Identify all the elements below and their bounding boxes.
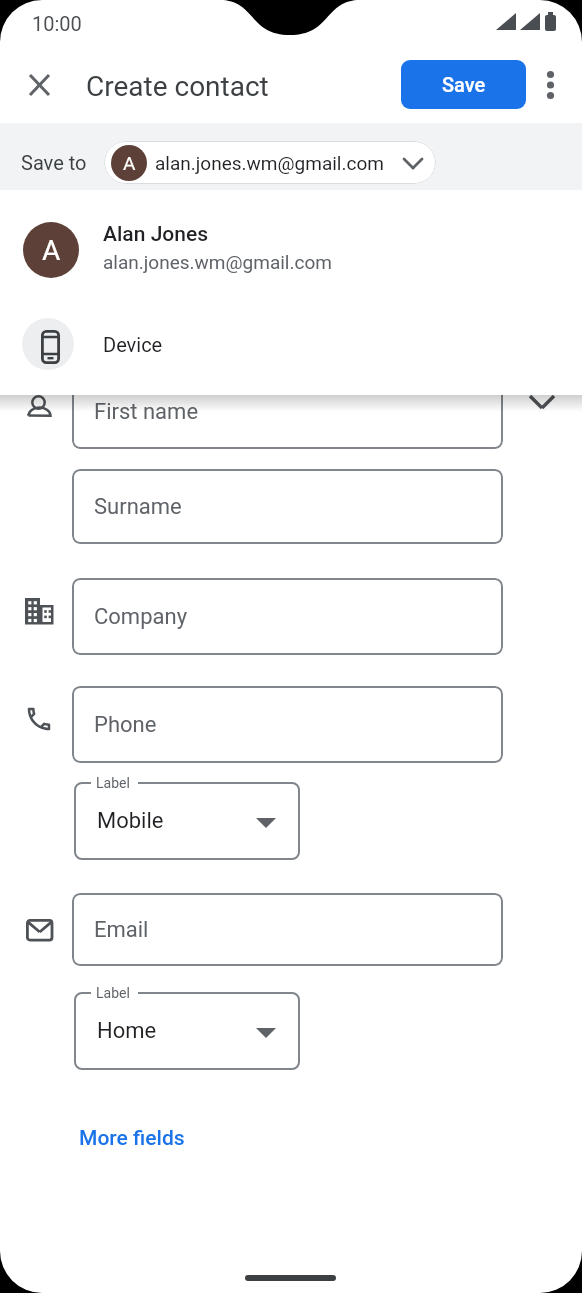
button[interactable]: [70, 1118, 195, 1158]
staticText: A: [42, 234, 61, 267]
staticText: First name: [94, 399, 199, 425]
staticText: 10:00: [32, 12, 82, 35]
staticText: alan.jones.wm@gmail.com: [103, 251, 332, 273]
button[interactable]: Save: [401, 60, 526, 109]
staticText: Surname: [94, 494, 182, 520]
button[interactable]: First name: [72, 374, 503, 449]
staticText: Label: [96, 775, 130, 791]
staticText: Save: [442, 73, 486, 96]
button[interactable]: [0, 202, 582, 294]
button[interactable]: Mobile: [74, 782, 300, 860]
button[interactable]: [526, 385, 558, 417]
button[interactable]: Home: [74, 992, 300, 1070]
staticText: Mobile: [97, 808, 164, 834]
staticText: Email: [94, 917, 149, 943]
button[interactable]: Surname: [72, 469, 503, 544]
staticText: A: [123, 152, 136, 174]
button[interactable]: Company: [72, 578, 503, 655]
button[interactable]: Email: [72, 893, 503, 966]
button[interactable]: [0, 306, 582, 390]
staticText: alan.jones.wm@gmail.com: [155, 152, 384, 174]
staticText: Home: [97, 1018, 157, 1044]
button[interactable]: [535, 69, 567, 101]
staticText: Save to: [21, 151, 87, 174]
staticText: Company: [94, 604, 188, 630]
staticText: Alan Jones: [103, 222, 209, 247]
staticText: More fields: [79, 1126, 185, 1151]
button[interactable]: [24, 69, 56, 101]
staticText: Device: [103, 333, 163, 356]
button[interactable]: A: [104, 141, 436, 184]
staticText: Phone: [94, 712, 157, 738]
staticText: Create contact: [86, 70, 269, 103]
button[interactable]: Phone: [72, 686, 503, 763]
staticText: Label: [96, 985, 130, 1001]
